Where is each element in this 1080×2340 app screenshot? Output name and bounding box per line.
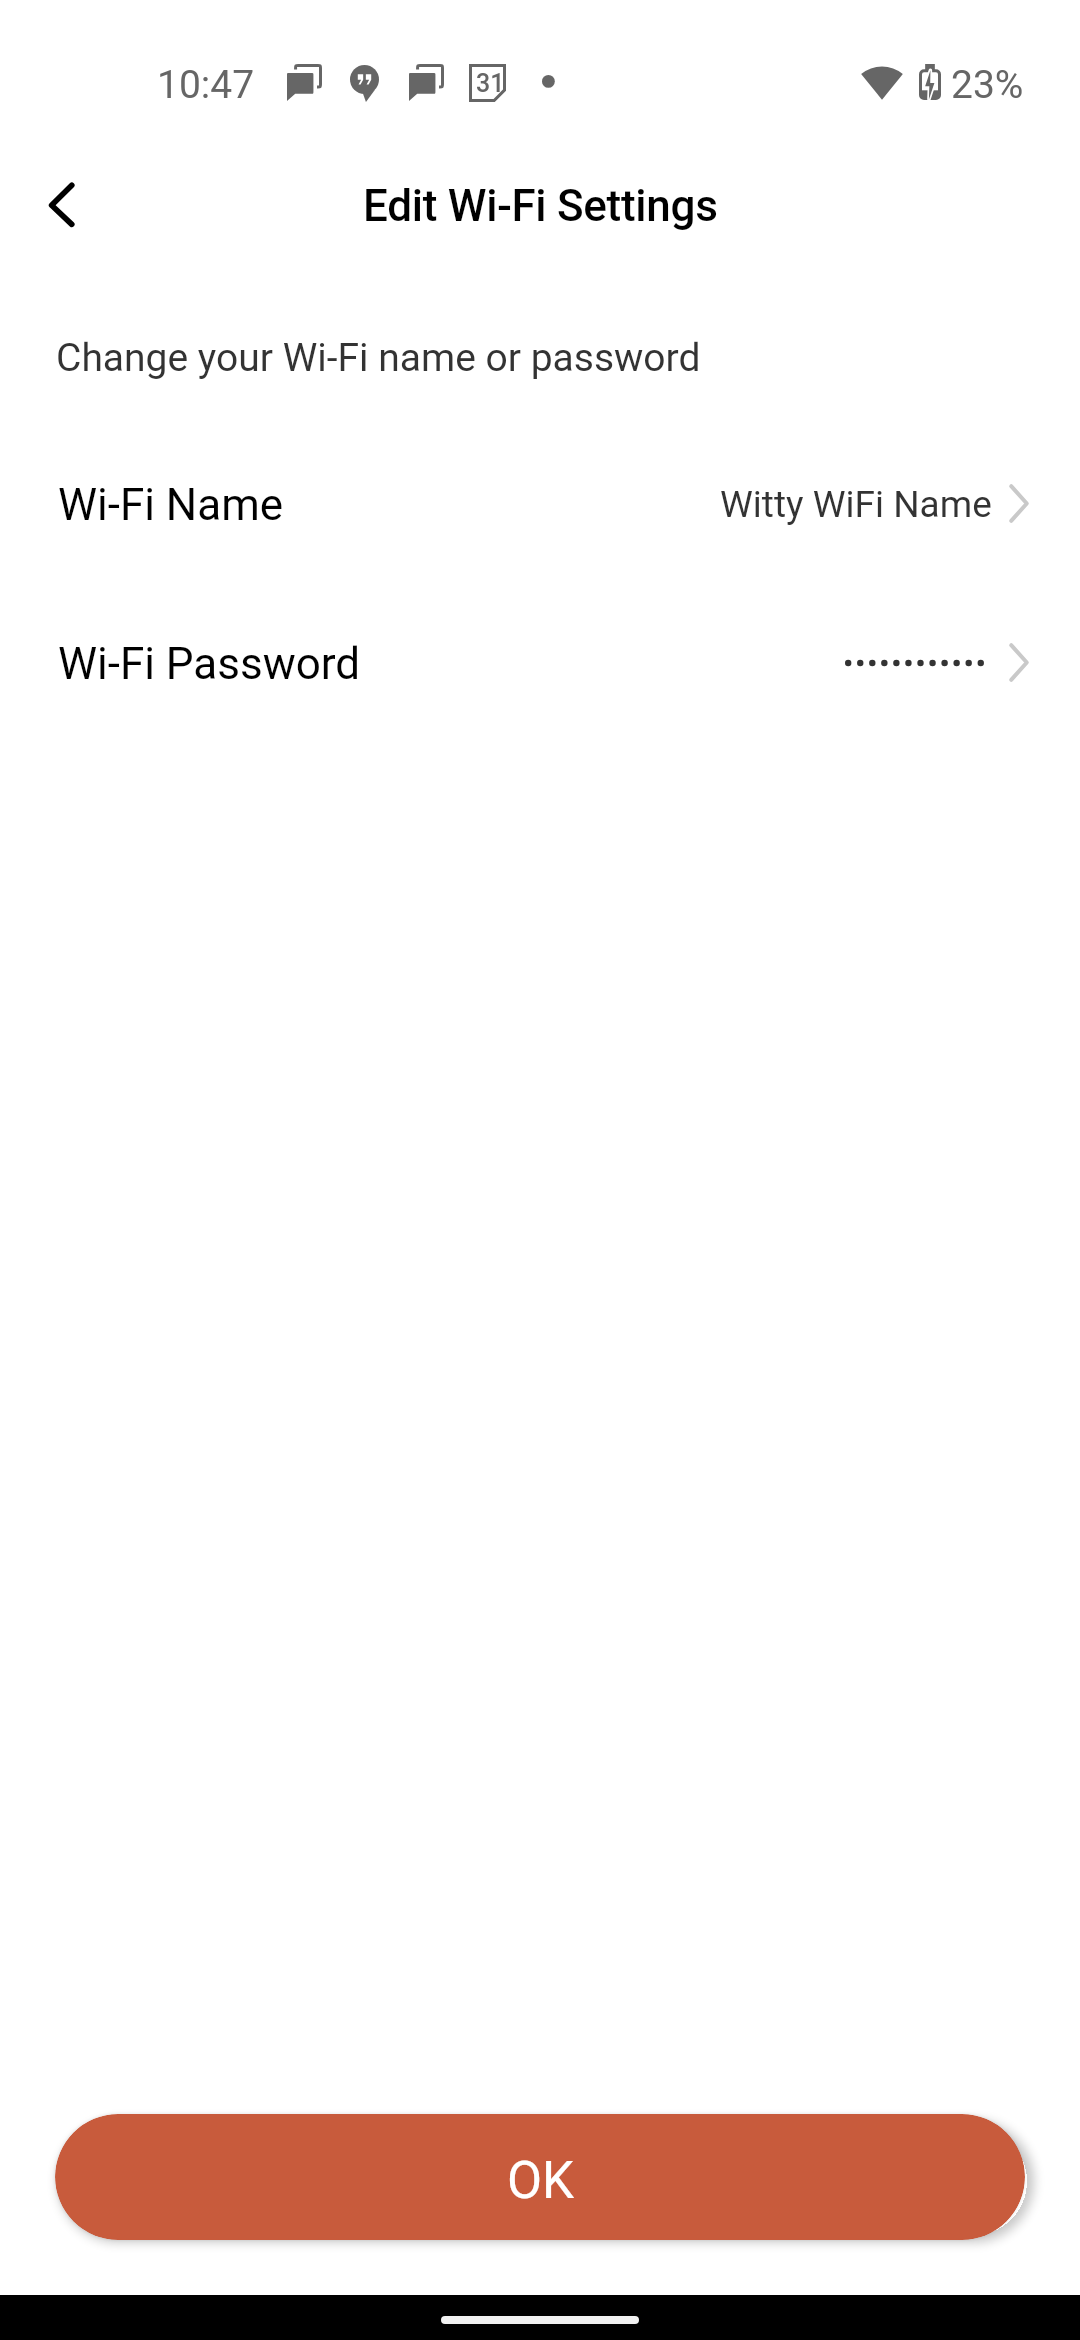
staticText: 23%: [951, 62, 1024, 108]
staticText: 10:47: [157, 62, 255, 108]
button[interactable]: Wi-Fi Name: [0, 472, 1080, 538]
staticText: Wi-Fi Name: [58, 479, 284, 531]
staticText: Witty WiFi Name: [720, 483, 992, 526]
staticText: 31: [476, 69, 505, 98]
staticText: Edit Wi-Fi Settings: [363, 180, 718, 232]
button[interactable]: OK: [55, 2114, 1025, 2240]
button[interactable]: Back: [16, 170, 92, 246]
staticText: Wi-Fi Password: [58, 638, 361, 690]
button[interactable]: Wi-Fi Password: [0, 631, 1080, 697]
staticText: OK: [507, 2151, 575, 2211]
staticText: Change your Wi-Fi name or password: [56, 335, 701, 381]
